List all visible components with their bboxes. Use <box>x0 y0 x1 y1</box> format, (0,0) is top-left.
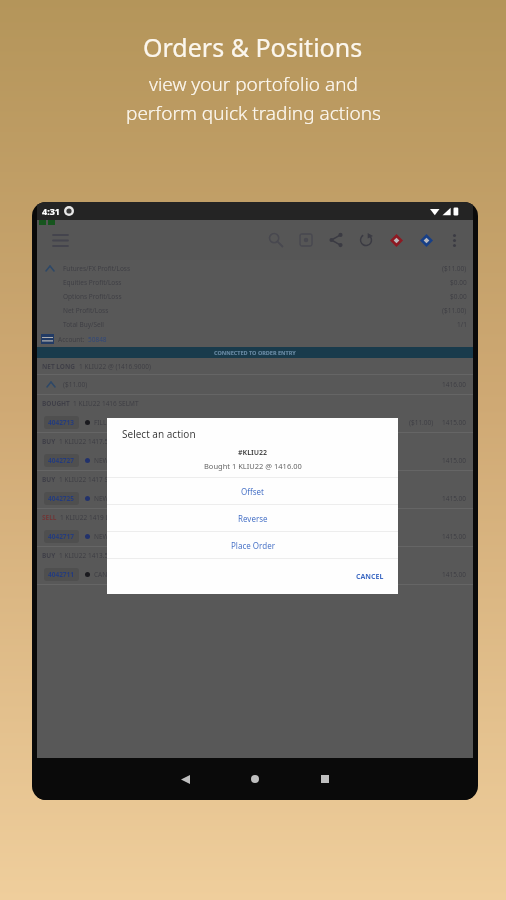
button[interactable]: Futures/FX Profit/Loss <box>37 261 473 275</box>
button[interactable]: Share <box>321 225 351 255</box>
staticText: #KLIU22 <box>238 448 268 458</box>
button[interactable]: Search <box>261 225 291 255</box>
staticText: $0.00 <box>450 278 467 287</box>
button[interactable]: Order action <box>381 225 411 255</box>
staticText: 1/1 <box>457 320 467 329</box>
staticText: BUY <box>42 475 56 484</box>
button[interactable]: BUY <box>37 433 473 450</box>
staticText: Offset <box>241 486 264 497</box>
staticText: Bought 1 KLIU22 @ 1416.00 <box>204 461 302 471</box>
staticText: Place Order <box>231 540 275 551</box>
staticText: Total Buy/Sell <box>63 320 105 329</box>
staticText: 4:31 <box>42 205 60 217</box>
staticText: Equities Profit/Loss <box>63 278 122 287</box>
staticText: Account: <box>58 335 85 344</box>
button[interactable]: Snapshot <box>291 225 321 255</box>
button[interactable]: CANCEL <box>342 566 398 588</box>
staticText: 1 KLIU22 1417 STP <box>59 475 116 484</box>
staticText: 50848 <box>88 335 107 344</box>
staticText: ($11.00) <box>442 264 467 273</box>
staticText: 1415.00 <box>442 456 467 465</box>
button[interactable]: Transfer <box>351 225 381 255</box>
button[interactable]: Offset <box>107 478 398 504</box>
button[interactable]: 4042711 <box>37 564 473 584</box>
staticText: perform quick trading actions <box>126 100 381 126</box>
staticText: BUY <box>42 437 56 446</box>
staticText: Reverse <box>238 513 268 524</box>
button[interactable]: Recents <box>303 758 347 800</box>
staticText: $0.00 <box>450 292 467 301</box>
staticText: CANCEL <box>356 572 384 582</box>
button[interactable]: Account: <box>37 331 473 347</box>
button[interactable]: BUY <box>37 547 473 564</box>
staticText: 1 KLIU22 1416 SELMT <box>73 399 139 408</box>
button[interactable]: Menu <box>43 223 77 257</box>
staticText: NEW ORDER <box>94 456 132 465</box>
staticText: 1 KLIU22 1419 LMT <box>60 513 119 522</box>
staticText: CONNECTED TO ORDER ENTRY <box>214 349 296 356</box>
staticText: 1 KLIU22 1417.50 LMT <box>59 437 127 446</box>
staticText: 1 KLIU22 @ (1416.9000) <box>79 362 151 371</box>
staticText: 4042725 <box>48 494 75 503</box>
staticText: BOUGHT <box>42 399 70 408</box>
button[interactable]: 4042717 <box>37 526 473 546</box>
staticText: 1415.00 <box>442 570 467 579</box>
staticText: 4042713 <box>48 418 75 427</box>
staticText: ($11.00) <box>409 418 434 427</box>
button[interactable]: SELL <box>37 509 473 526</box>
staticText: Options Profit/Loss <box>63 292 122 301</box>
button[interactable]: 4042713 <box>37 412 473 432</box>
staticText: view your portofolio and <box>149 71 358 97</box>
staticText: FILLED <box>94 418 115 427</box>
button[interactable]: Place Order <box>107 532 398 558</box>
staticText: Net Profit/Loss <box>63 306 109 315</box>
staticText: 1416.00 <box>442 380 467 389</box>
staticText: 1415.00 <box>442 532 467 541</box>
staticText: 4042717 <box>48 532 75 541</box>
staticText: Select an action <box>122 427 196 441</box>
staticText: NET LONG <box>42 362 76 371</box>
staticText: 4042711 <box>48 570 75 579</box>
button[interactable]: 4042727 <box>37 450 473 470</box>
staticText: 1415.00 <box>442 494 467 503</box>
staticText: ($11.00) <box>63 380 88 389</box>
button[interactable]: More options <box>441 227 467 253</box>
staticText: BUY <box>42 551 56 560</box>
staticText: ($11.00) <box>442 306 467 315</box>
staticText: 1 KLIU22 1413.50 LMT <box>59 551 127 560</box>
button[interactable]: Order action <box>411 225 441 255</box>
staticText: NEW ORDER <box>94 532 132 541</box>
button[interactable]: Back <box>163 758 207 800</box>
staticText: Futures/FX Profit/Loss <box>63 264 131 273</box>
staticText: 4042727 <box>48 456 75 465</box>
button[interactable]: Home <box>233 758 277 800</box>
button[interactable]: Reverse <box>107 505 398 531</box>
staticText: CANCELED BY #4042727 <box>94 570 169 579</box>
button[interactable]: BUY <box>37 471 473 488</box>
staticText: SELL <box>42 513 57 522</box>
staticText: 1415.00 <box>442 418 467 427</box>
button[interactable]: 4042725 <box>37 488 473 508</box>
staticText: Orders & Positions <box>143 30 363 64</box>
staticText: NEW ORDER <box>94 494 132 503</box>
